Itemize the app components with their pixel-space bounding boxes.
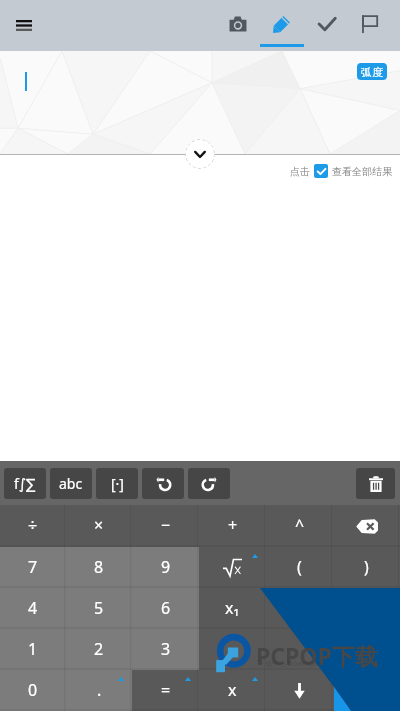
staticText: ÷ [28, 514, 38, 536]
staticText: 8 [94, 556, 104, 578]
button[interactable]: Undo [142, 468, 184, 499]
button[interactable]: 1 [0, 629, 66, 670]
staticText: 下载中心 Download [258, 659, 322, 669]
staticText: ) [364, 556, 369, 578]
button[interactable]: 2 [66, 629, 132, 670]
button[interactable]: Camera [216, 0, 260, 51]
staticText: 1 [28, 638, 38, 660]
button[interactable]: [·] [96, 468, 138, 499]
staticText: x [228, 679, 237, 701]
button[interactable]: . [66, 670, 132, 711]
button[interactable]: × [66, 505, 132, 547]
button[interactable]: 3 [132, 629, 199, 670]
button[interactable]: + [199, 505, 266, 547]
staticText: 2 [94, 638, 104, 660]
staticText: 6 [161, 597, 171, 619]
button[interactable]: ^ [266, 505, 333, 547]
staticText: + [228, 514, 238, 536]
button[interactable]: 7 [0, 547, 66, 588]
button[interactable] [333, 629, 400, 670]
button[interactable]: 弧度 [357, 63, 387, 80]
button[interactable] [266, 629, 333, 670]
staticText: 5 [94, 597, 104, 619]
staticText: 4 [28, 597, 38, 619]
staticText: ^ [295, 514, 305, 536]
staticText: 点击 [290, 165, 310, 178]
button[interactable]: Expand results [185, 139, 215, 169]
button[interactable] [333, 670, 400, 711]
button[interactable]: 4 [0, 588, 66, 629]
button[interactable]: x₁ [199, 588, 266, 629]
button[interactable]: f∫∑ [4, 468, 46, 499]
button[interactable]: Redo [188, 468, 230, 499]
button[interactable]: ÷ [0, 505, 66, 547]
staticText: 查看全部结果 [332, 165, 392, 178]
button[interactable]: Flag [348, 0, 392, 51]
button[interactable]: Check [305, 0, 349, 51]
staticText: . [97, 679, 102, 701]
button[interactable]: ( [266, 547, 333, 588]
staticText: 9 [161, 556, 171, 578]
button[interactable]: Enter [266, 670, 333, 711]
button[interactable]: Draw [260, 0, 304, 51]
button[interactable]: x [199, 670, 266, 711]
button[interactable]: 点击 [290, 164, 392, 178]
button[interactable]: abc [50, 468, 92, 499]
staticText: = [161, 679, 171, 701]
button[interactable]: Backspace [333, 505, 400, 547]
button[interactable]: = [132, 670, 199, 711]
staticText: x₁ [225, 597, 240, 619]
staticText: PCPOP下载 [256, 640, 378, 671]
button[interactable]: ) [333, 547, 400, 588]
button[interactable]: 6 [132, 588, 199, 629]
button[interactable]: 9 [132, 547, 199, 588]
staticText: abc [59, 474, 83, 493]
button[interactable] [266, 588, 333, 629]
staticText: ( [297, 556, 302, 578]
button[interactable]: 5 [66, 588, 132, 629]
staticText: × [94, 514, 104, 536]
button[interactable]: Delete [356, 468, 395, 499]
staticText: [·] [111, 474, 124, 493]
button[interactable]: Square root [199, 547, 266, 588]
button[interactable]: 0 [0, 670, 66, 711]
staticText: 3 [161, 638, 171, 660]
button[interactable]: − [132, 505, 199, 547]
staticText: f∫∑ [14, 474, 36, 493]
staticText: 7 [28, 556, 38, 578]
staticText: 弧度 [361, 65, 383, 79]
button[interactable]: 8 [66, 547, 132, 588]
staticText: 0 [28, 679, 38, 701]
button[interactable]: Menu [4, 0, 44, 51]
button[interactable] [199, 629, 266, 670]
staticText: − [161, 514, 171, 536]
